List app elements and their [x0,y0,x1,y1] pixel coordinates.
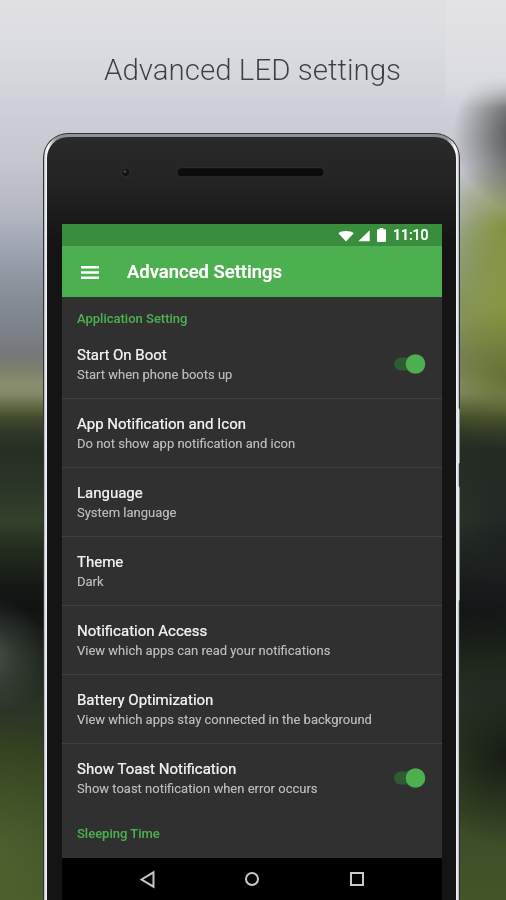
staticText: Advanced Settings [127,261,283,283]
button[interactable]: Open navigation drawer [68,250,112,294]
button[interactable]: Notification Access [62,606,442,674]
staticText: Language [77,484,143,502]
staticText: Start On Boot [77,346,167,364]
button[interactable]: Theme [62,537,442,605]
staticText: System language [77,505,177,520]
button[interactable]: Back [117,858,177,900]
button[interactable]: Toggle Show Toast Notification [392,765,428,791]
staticText: View which apps stay connected in the ba… [77,712,372,727]
staticText: App Notification and Icon [77,415,246,433]
staticText: Show toast notification when error occur… [77,781,318,796]
staticText: Advanced LED settings [104,53,402,88]
button[interactable]: Home [222,858,282,900]
button[interactable]: App Notification and Icon [62,399,442,467]
staticText: Battery Optimization [77,691,214,709]
button[interactable]: Show Toast Notification [62,744,442,812]
staticText: Application Setting [77,311,188,326]
button[interactable]: Language [62,468,442,536]
staticText: View which apps can read your notificati… [77,643,331,658]
staticText: Do not show app notification and icon [77,436,296,451]
button[interactable]: Battery Optimization [62,675,442,743]
staticText: Notification Access [77,622,208,640]
staticText: Theme [77,553,124,571]
button[interactable]: Start On Boot [62,330,442,398]
staticText: Start when phone boots up [77,367,233,382]
button[interactable]: Recent apps [327,858,387,900]
staticText: Show Toast Notification [77,760,237,778]
staticText: 11:10 [393,227,429,243]
staticText: Sleeping Time [77,826,160,841]
staticText: Dark [77,574,104,589]
button[interactable]: Toggle Start On Boot [392,351,428,377]
